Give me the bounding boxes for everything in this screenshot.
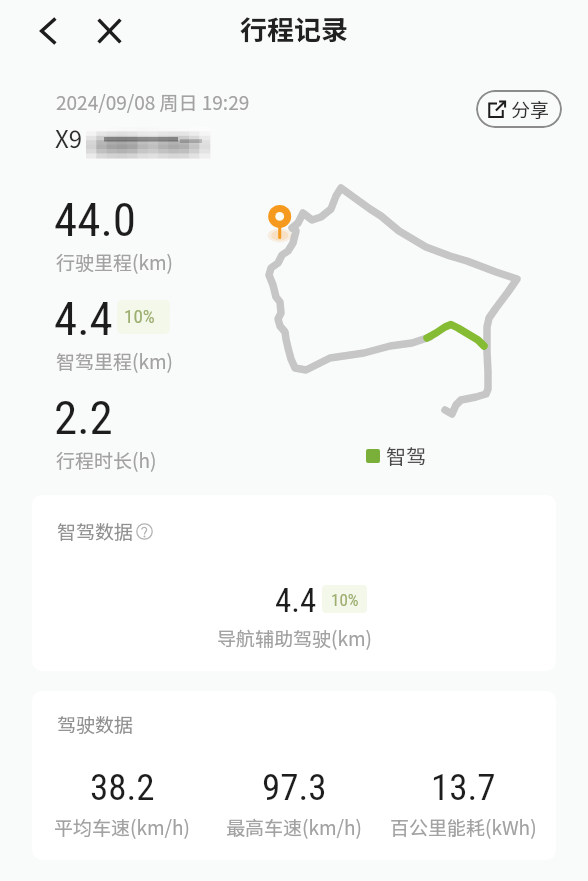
staticText: 97.3 xyxy=(262,766,327,809)
staticText: 行程时长(h) xyxy=(56,446,157,474)
staticText: 平均车速(km/h) xyxy=(54,813,190,841)
staticText: 38.2 xyxy=(90,766,155,809)
staticText: 2.2 xyxy=(54,390,113,445)
staticText: 百公里能耗(kWh) xyxy=(390,813,537,841)
staticText: 行程记录 xyxy=(240,9,348,48)
staticText: 智驾 xyxy=(386,441,426,470)
staticText: 驾驶数据 xyxy=(57,710,134,738)
button[interactable]: 分享 xyxy=(476,90,562,128)
staticText: 最高车速(km/h) xyxy=(226,813,362,841)
staticText: 44.0 xyxy=(54,192,136,247)
button[interactable]: Back xyxy=(26,9,70,53)
staticText: 导航辅助驾驶(km) xyxy=(217,624,372,652)
button[interactable]: 智驾数据 xyxy=(57,517,153,545)
staticText: 4.4 xyxy=(54,291,113,346)
staticText: 智驾里程(km) xyxy=(56,347,173,375)
staticText: 2024/09/08 周日 19:29 xyxy=(56,88,250,116)
button[interactable]: Close xyxy=(87,9,131,53)
staticText: 行驶里程(km) xyxy=(56,248,173,276)
staticText: 13.7 xyxy=(431,766,496,809)
staticText: 10% xyxy=(331,590,359,610)
staticText: 4.4 xyxy=(275,581,317,620)
staticText: 智驾数据 xyxy=(57,517,134,545)
staticText: 10% xyxy=(124,305,155,327)
other: About assisted driving data xyxy=(136,523,153,540)
staticText: X9 xyxy=(55,120,83,155)
staticText: 分享 xyxy=(511,95,550,123)
